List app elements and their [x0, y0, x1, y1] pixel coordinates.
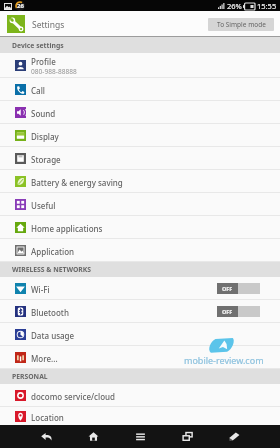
staticText: Useful — [31, 200, 56, 211]
button[interactable]: Home — [70, 425, 117, 448]
staticText: 080-988-88888 — [31, 67, 77, 76]
staticText: docomo service/cloud — [31, 391, 115, 402]
button[interactable]: Recent apps — [164, 425, 211, 448]
button[interactable]: Application — [0, 239, 280, 262]
staticText: Profile — [31, 56, 56, 67]
staticText: OFF — [222, 285, 233, 292]
button[interactable]: Back — [23, 425, 70, 448]
staticText: To Simple mode — [217, 20, 266, 29]
button[interactable]: Toggle — [217, 283, 260, 294]
staticText: More... — [31, 353, 58, 364]
staticText: 26 — [17, 2, 24, 10]
button[interactable]: Useful — [0, 193, 280, 216]
staticText: 26% — [227, 1, 242, 11]
button[interactable]: More... — [0, 346, 280, 369]
staticText: Display — [31, 131, 59, 142]
staticText: WIRELESS & NETWORKS — [12, 265, 92, 274]
button[interactable]: Sound — [0, 101, 280, 124]
button[interactable]: Menu — [117, 425, 164, 448]
button[interactable]: Toggle — [217, 306, 260, 317]
staticText: Battery & energy saving — [31, 177, 123, 188]
staticText: Data usage — [31, 330, 75, 341]
staticText: Application — [31, 246, 75, 257]
staticText: Bluetooth — [31, 307, 69, 318]
button[interactable]: Home applications — [0, 216, 280, 239]
staticText: Storage — [31, 154, 61, 165]
button[interactable]: To Simple mode — [208, 18, 274, 31]
button[interactable]: Profile — [0, 53, 280, 78]
button[interactable]: Call — [0, 78, 280, 101]
staticText: OFF — [222, 308, 233, 315]
button[interactable]: Location — [0, 407, 280, 425]
button[interactable]: Battery & energy saving — [0, 170, 280, 193]
button[interactable]: Display — [0, 124, 280, 147]
button[interactable]: Data usage — [0, 323, 280, 346]
staticText: Sound — [31, 108, 56, 119]
button[interactable]: Wi-Fi — [0, 277, 280, 300]
staticText: 15:55 — [257, 1, 277, 11]
staticText: Call — [31, 85, 45, 96]
staticText: mobile-review.com — [184, 354, 264, 366]
button[interactable]: Bluetooth — [0, 300, 280, 323]
button[interactable]: Edit — [211, 425, 258, 448]
staticText: Wi-Fi — [31, 284, 50, 295]
button[interactable]: docomo service/cloud — [0, 384, 280, 407]
staticText: Device settings — [12, 41, 64, 50]
staticText: PERSONAL — [12, 372, 48, 381]
staticText: Home applications — [31, 223, 103, 234]
staticText: Settings — [32, 19, 65, 31]
button[interactable]: Storage — [0, 147, 280, 170]
staticText: Location — [31, 412, 64, 423]
